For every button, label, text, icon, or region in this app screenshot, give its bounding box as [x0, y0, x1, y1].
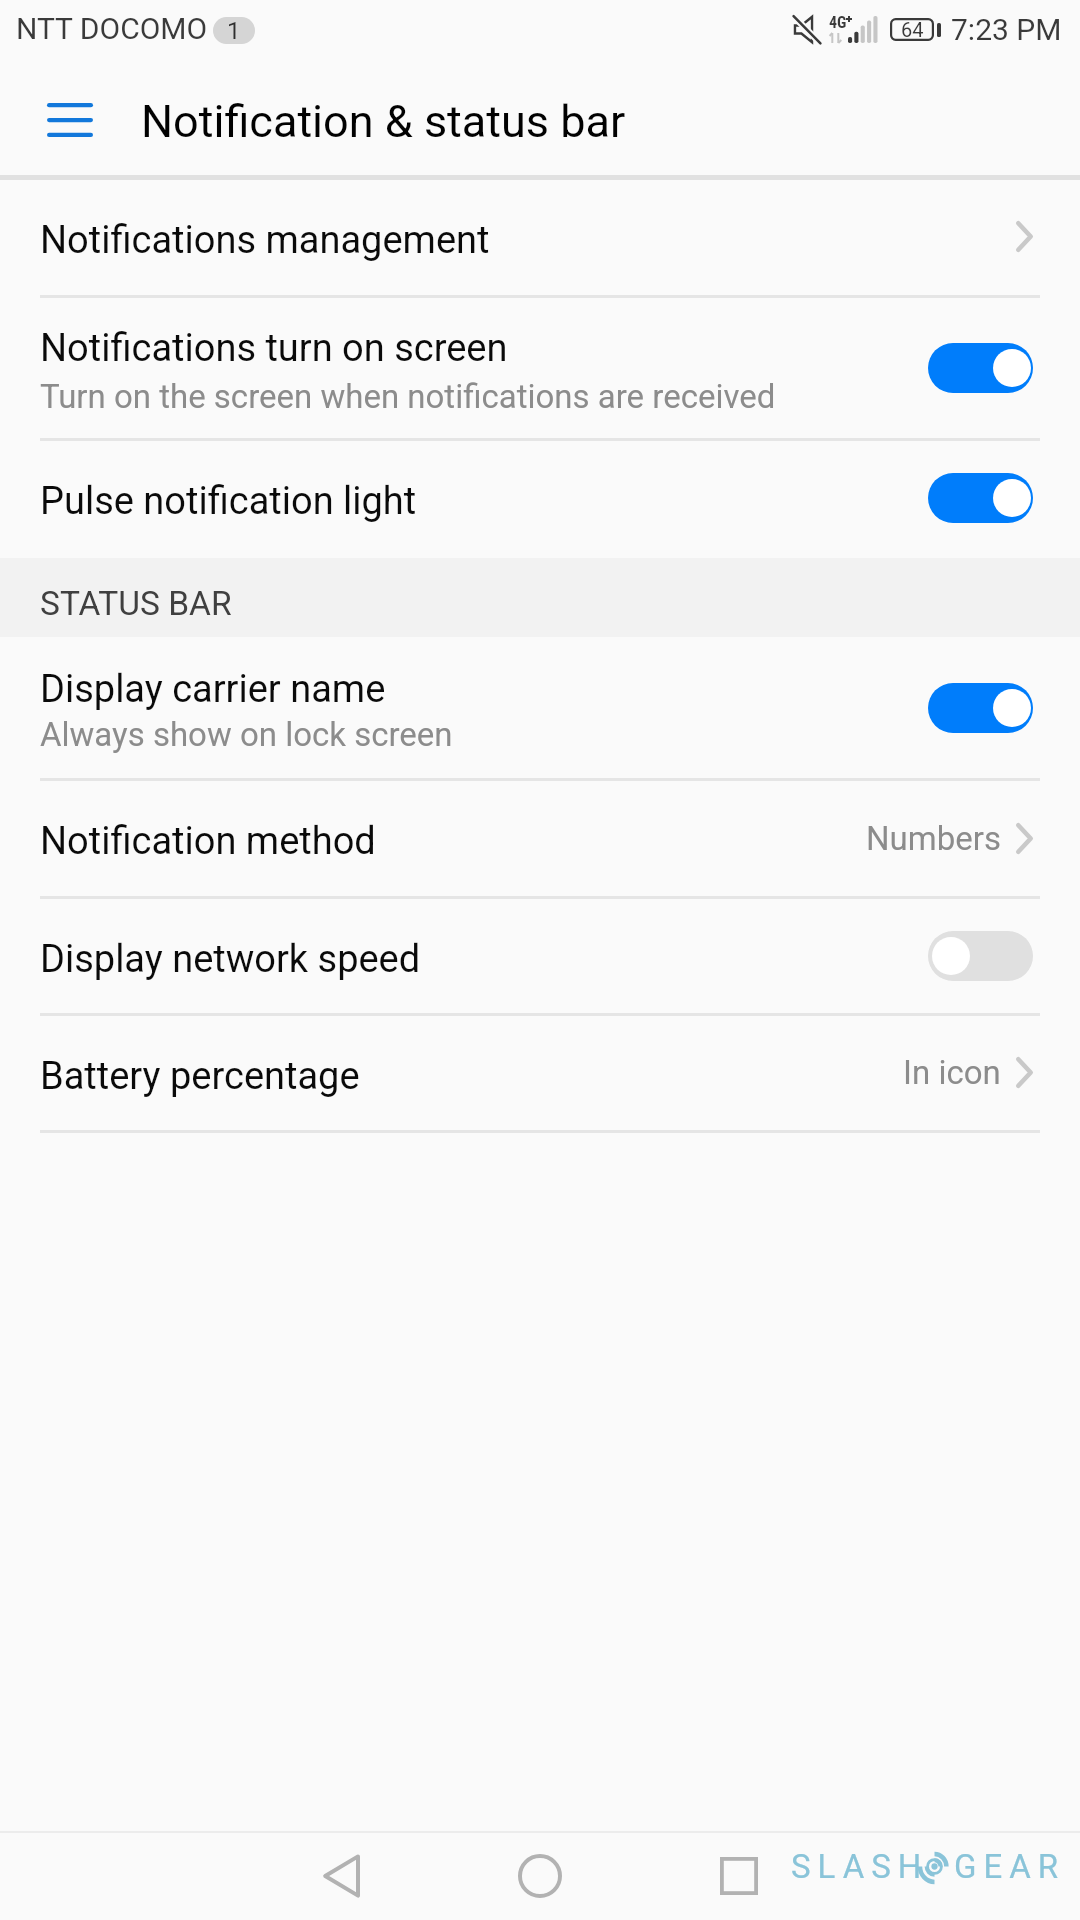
button[interactable]: Home — [495, 1833, 585, 1919]
button[interactable] — [0, 1014, 1080, 1131]
button[interactable]: Switch on — [928, 473, 1033, 523]
staticText: Pulse notification light — [40, 479, 417, 524]
button[interactable]: Back — [296, 1833, 386, 1919]
staticText: 7:23 PM — [951, 12, 1062, 47]
button[interactable] — [0, 779, 1080, 897]
staticText: STATUS BAR — [40, 584, 232, 623]
button[interactable]: Switch on — [928, 683, 1033, 733]
staticText: SLASH — [791, 1847, 929, 1886]
staticText: Always show on lock screen — [40, 715, 453, 754]
staticText: GEAR — [954, 1847, 1066, 1886]
button[interactable] — [0, 637, 1080, 779]
staticText: Display carrier name — [40, 667, 386, 712]
button[interactable]: Recent apps — [694, 1833, 784, 1919]
staticText: 64 — [901, 18, 924, 41]
staticText: 4G — [829, 13, 847, 32]
staticText: Numbers — [866, 819, 1001, 858]
staticText: In icon — [903, 1053, 1001, 1092]
button[interactable] — [0, 897, 1080, 1014]
staticText: Notification method — [40, 819, 376, 864]
button[interactable] — [0, 296, 1080, 439]
button[interactable]: Switch off — [928, 931, 1033, 981]
staticText: Notification & status bar — [141, 95, 626, 148]
staticText: Display network speed — [40, 937, 421, 982]
staticText: Battery percentage — [40, 1054, 360, 1099]
button[interactable]: Switch on — [928, 343, 1033, 393]
staticText: Notifications turn on screen — [40, 326, 508, 371]
button[interactable] — [0, 180, 1080, 296]
staticText: Notifications management — [40, 218, 490, 263]
button[interactable]: Open navigation menu — [20, 71, 120, 167]
staticText: 1 — [227, 17, 241, 44]
button[interactable] — [0, 439, 1080, 558]
staticText: Turn on the screen when notifications ar… — [40, 377, 776, 416]
staticText: NTT DOCOMO — [16, 11, 208, 46]
